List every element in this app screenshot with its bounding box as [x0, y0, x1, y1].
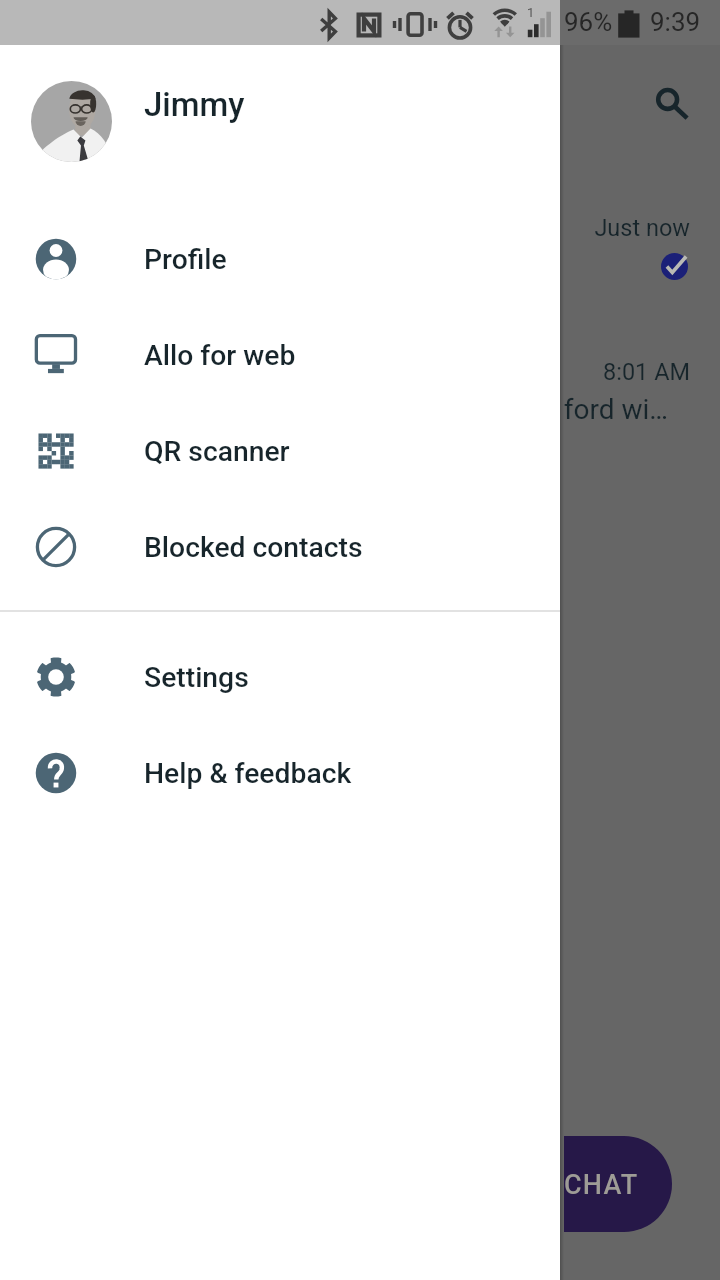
staticText: 9:39 — [650, 7, 701, 37]
button[interactable]: Just now — [0, 194, 720, 338]
staticText: Allo for web — [144, 339, 296, 372]
staticText: Jimmy — [144, 85, 245, 124]
staticText: 1 — [527, 5, 535, 20]
staticText: Profile — [144, 243, 227, 276]
staticText: Help & feedback — [144, 757, 352, 790]
button[interactable]: Profile — [0, 211, 560, 307]
button[interactable]: 8:01 AM — [0, 338, 720, 482]
button[interactable]: Allo for web — [0, 307, 560, 403]
staticText: 96% — [564, 7, 613, 37]
staticText: Blocked contacts — [144, 531, 363, 564]
button[interactable]: Blocked contacts — [0, 499, 560, 595]
button[interactable]: Jimmy — [0, 45, 560, 210]
staticText: CHAT — [564, 1169, 639, 1201]
staticText: 8:01 AM — [0, 358, 690, 386]
button[interactable]: Search — [647, 80, 695, 128]
button[interactable]: Help & feedback — [0, 725, 560, 821]
staticText: Settings — [144, 661, 249, 694]
button[interactable]: Settings — [0, 629, 560, 725]
staticText: Stanford wi… — [0, 393, 668, 426]
button[interactable]: CHAT — [472, 1136, 672, 1232]
button[interactable]: QR scanner — [0, 403, 560, 499]
staticText: QR scanner — [144, 435, 290, 468]
staticText: Just now — [0, 214, 690, 242]
